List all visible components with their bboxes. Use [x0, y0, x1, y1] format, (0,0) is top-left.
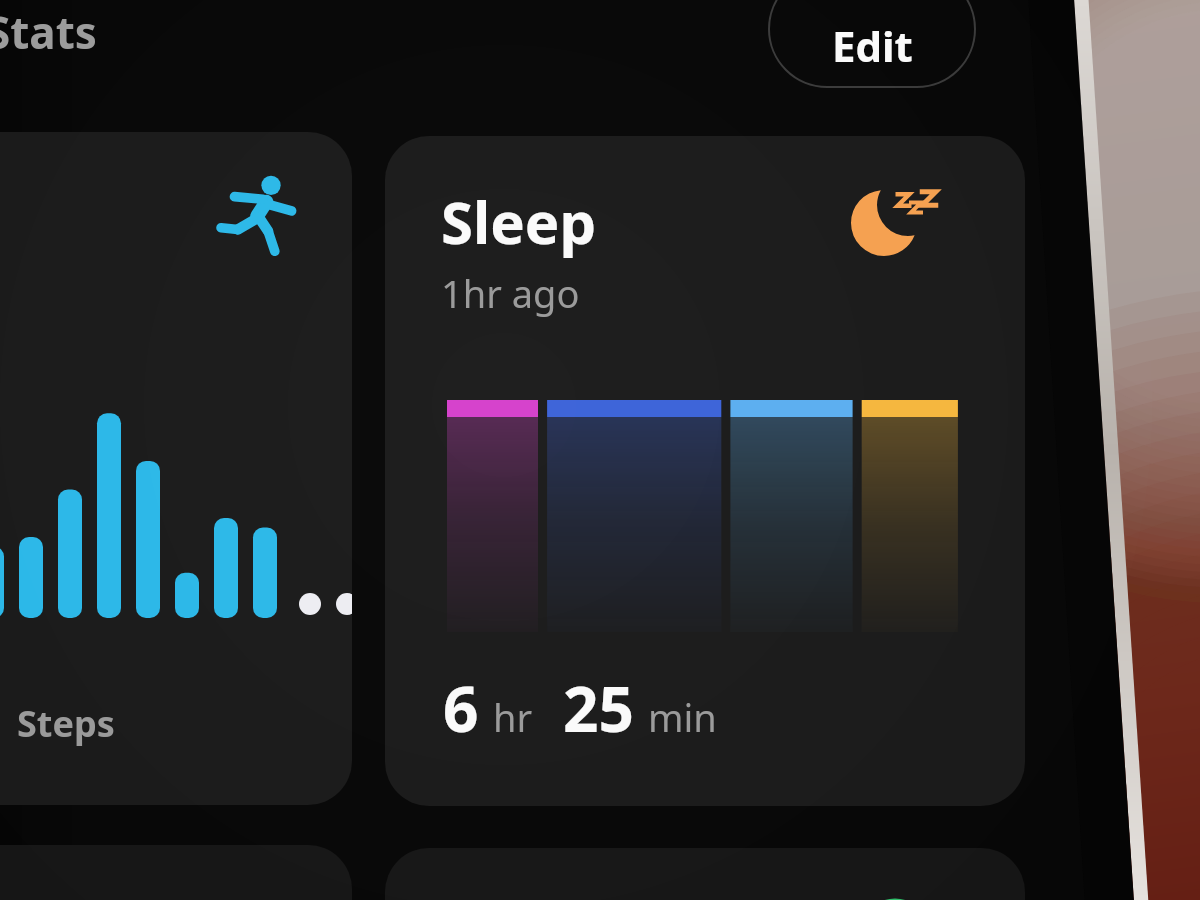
staticText: 1hr ago: [441, 267, 580, 319]
button[interactable]: Sleep: [385, 136, 1025, 806]
staticText: Sleep: [441, 182, 597, 261]
staticText: min: [648, 691, 717, 743]
other: Steps: [216, 174, 300, 258]
staticText: Edit: [832, 17, 913, 74]
other: Activity: [855, 892, 935, 900]
button[interactable]: Steps: [0, 132, 352, 805]
staticText: 25: [563, 666, 634, 750]
staticText: Steps: [17, 699, 115, 748]
staticText: Stats: [0, 2, 97, 62]
button[interactable]: Edit: [768, 0, 976, 88]
staticText: hr: [493, 691, 533, 743]
other: Sleep: [847, 180, 947, 280]
button[interactable]: Activity: [385, 848, 1025, 900]
staticText: 6: [443, 666, 479, 750]
